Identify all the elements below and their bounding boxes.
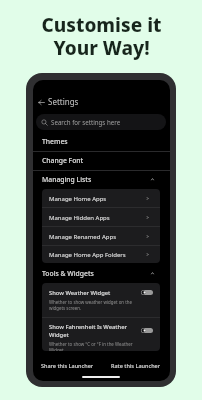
staticText: Manage Hidden Apps xyxy=(49,214,110,222)
staticText: Show Fahrenheit Is Weather Widget xyxy=(49,323,127,339)
staticText: Settings xyxy=(48,96,79,107)
button[interactable]: Share this Launcher xyxy=(33,357,101,374)
staticText: Your Way! xyxy=(53,35,150,61)
staticText: Managing Lists xyxy=(42,175,92,184)
button[interactable]: Back xyxy=(36,97,46,107)
button[interactable]: Manage Hidden Apps xyxy=(42,208,160,227)
button[interactable]: Search for settings here xyxy=(36,114,166,130)
button[interactable]: Manage Home App Folders xyxy=(42,246,160,263)
staticText: Whether to show °C or °F in the Weather … xyxy=(49,341,133,351)
staticText: Themes xyxy=(42,137,68,146)
staticText: Whether to show weather widget on the wi… xyxy=(49,299,132,312)
button[interactable]: Manage Renamed Apps xyxy=(42,227,160,246)
staticText: Manage Renamed Apps xyxy=(49,233,117,241)
button[interactable]: Show Weather Widget xyxy=(42,283,160,317)
staticText: Search for settings here xyxy=(51,118,121,126)
staticText: Share this Launcher xyxy=(41,362,94,369)
button[interactable]: Tools & Widgets xyxy=(33,263,170,283)
button[interactable]: Rate this Launcher xyxy=(101,357,170,374)
button[interactable]: Show Fahrenheit Is Weather Widget xyxy=(42,317,160,351)
button[interactable]: Themes xyxy=(33,131,170,151)
staticText: Rate this Launcher xyxy=(111,362,161,369)
staticText: Change Font xyxy=(42,156,84,165)
staticText: Customise it xyxy=(41,12,162,38)
button[interactable]: Back xyxy=(33,92,170,111)
button[interactable]: Managing Lists xyxy=(33,170,170,189)
button[interactable]: Toggle xyxy=(141,328,153,333)
button[interactable]: Change Font xyxy=(33,151,170,170)
staticText: Manage Home App Folders xyxy=(49,251,126,259)
button[interactable]: Manage Home Apps xyxy=(42,189,160,208)
staticText: Show Weather Widget xyxy=(49,289,111,297)
staticText: Tools & Widgets xyxy=(42,269,94,278)
staticText: Manage Home Apps xyxy=(49,195,107,203)
button[interactable]: Toggle xyxy=(141,290,153,295)
